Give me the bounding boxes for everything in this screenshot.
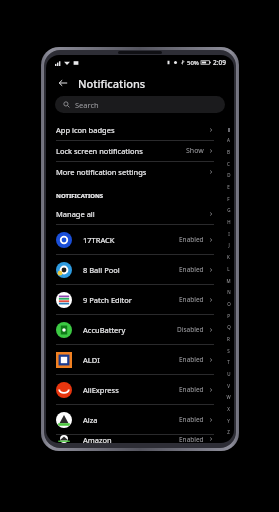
staticText: 8 Ball Pool: [83, 265, 120, 275]
staticText: App icon badges: [56, 125, 115, 135]
staticText: 17TRACK: [83, 235, 115, 245]
staticText: Enabled: [179, 235, 204, 244]
staticText: Enabled: [179, 355, 204, 364]
button[interactable]: Manage all: [46, 204, 234, 224]
staticText: Enabled: [179, 435, 204, 443]
button[interactable]: Search: [55, 96, 225, 113]
staticText: J: [228, 242, 230, 248]
staticText: Enabled: [179, 385, 204, 394]
staticText: G: [227, 207, 231, 213]
staticText: 50%: [187, 59, 199, 67]
staticText: O: [227, 301, 231, 307]
button[interactable]: More notification settings: [46, 162, 234, 182]
staticText: Enabled: [179, 265, 204, 274]
staticText: Show: [186, 146, 204, 156]
staticText: Q: [227, 324, 231, 330]
staticText: Lock screen notifications: [56, 146, 143, 156]
staticText: A: [227, 137, 230, 143]
staticText: AliExpress: [83, 385, 119, 395]
staticText: 9 Patch Editor: [83, 295, 132, 305]
staticText: F: [227, 196, 230, 202]
staticText: Manage all: [56, 209, 95, 219]
staticText: B: [227, 149, 230, 155]
button[interactable]: AccuBattery: [46, 315, 234, 344]
staticText: M: [226, 278, 231, 284]
staticText: K: [227, 254, 230, 260]
staticText: C: [227, 161, 230, 167]
staticText: Z: [227, 429, 230, 435]
staticText: Enabled: [179, 415, 204, 424]
staticText: More notification settings: [56, 167, 147, 177]
staticText: E: [227, 184, 230, 190]
staticText: Notifications: [78, 76, 146, 91]
button[interactable]: Alza: [46, 405, 234, 434]
button[interactable]: 8 Ball Pool: [46, 255, 234, 284]
staticText: W: [226, 394, 231, 400]
staticText: L: [227, 266, 230, 272]
staticText: Y: [227, 418, 230, 424]
staticText: Disabled: [177, 325, 204, 334]
staticText: N: [227, 289, 231, 295]
staticText: AccuBattery: [83, 325, 126, 335]
button[interactable]: 17TRACK: [46, 225, 234, 254]
button[interactable]: 9 Patch Editor: [46, 285, 234, 314]
staticText: 2:09: [213, 58, 226, 67]
staticText: Search: [75, 100, 99, 110]
staticText: H: [227, 219, 231, 225]
staticText: NOTIFICATIONS: [56, 192, 104, 200]
staticText: P: [227, 313, 230, 319]
staticText: R: [227, 336, 230, 342]
staticText: D: [227, 172, 231, 178]
staticText: V: [227, 383, 230, 389]
button[interactable]: AliExpress: [46, 375, 234, 404]
button[interactable]: ALDI: [46, 345, 234, 374]
staticText: Amazon: [83, 435, 112, 443]
staticText: X: [227, 406, 230, 412]
button[interactable]: Lock screen notifications: [46, 141, 234, 161]
button[interactable]: App icon badges: [46, 120, 234, 140]
staticText: I: [228, 231, 230, 237]
staticText: T: [227, 359, 230, 365]
staticText: ALDI: [83, 355, 100, 365]
staticText: Alza: [83, 415, 98, 425]
staticText: Enabled: [179, 295, 204, 304]
staticText: S: [227, 348, 230, 354]
staticText: U: [227, 371, 231, 377]
button[interactable]: Back: [54, 74, 72, 92]
button[interactable]: Amazon: [46, 435, 234, 443]
